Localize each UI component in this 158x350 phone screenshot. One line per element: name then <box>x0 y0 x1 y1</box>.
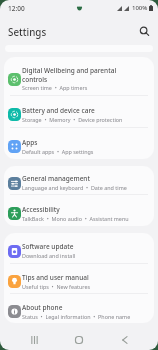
staticText: Apps <box>22 138 38 147</box>
staticText: Settings <box>8 26 47 39</box>
staticText: Accessibility <box>22 205 60 214</box>
staticText: Storage • Memory • Device protection <box>22 116 123 123</box>
button[interactable]: Accessibility <box>4 195 154 226</box>
button[interactable]: About phone <box>4 294 154 323</box>
staticText: Digital Wellbeing and parental controls <box>22 66 122 83</box>
staticText: Battery and device care <box>22 106 95 115</box>
button[interactable]: Recent apps <box>23 329 45 350</box>
staticText: Default apps • App settings <box>22 148 94 155</box>
staticText: Useful tips • New features <box>22 283 91 290</box>
staticText: Tips and user manual <box>22 273 89 282</box>
button[interactable]: Digital Wellbeing and parental controls <box>4 57 154 95</box>
button[interactable]: Battery and device care <box>4 96 154 127</box>
staticText: 100% <box>132 4 148 12</box>
staticText: Software update <box>22 242 74 251</box>
staticText: About phone <box>22 303 63 312</box>
button[interactable]: Software update <box>4 233 154 263</box>
button[interactable]: Tips and user manual <box>4 264 154 293</box>
staticText: Status • Legal information • Phone name <box>22 313 131 320</box>
button[interactable]: Back <box>113 329 135 350</box>
staticText: Download and install <box>22 252 76 259</box>
button[interactable]: Home <box>68 329 90 350</box>
staticText: Screen time • App timers <box>22 84 88 91</box>
button[interactable]: Search <box>135 22 153 40</box>
button[interactable]: Apps <box>4 128 154 159</box>
staticText: Language and keyboard • Date and time <box>22 184 127 191</box>
staticText: 12:00 <box>8 4 25 13</box>
staticText: TalkBack • Mono audio • Assistant menu <box>22 215 129 222</box>
button[interactable]: General management <box>4 166 154 194</box>
staticText: General management <box>22 174 90 183</box>
